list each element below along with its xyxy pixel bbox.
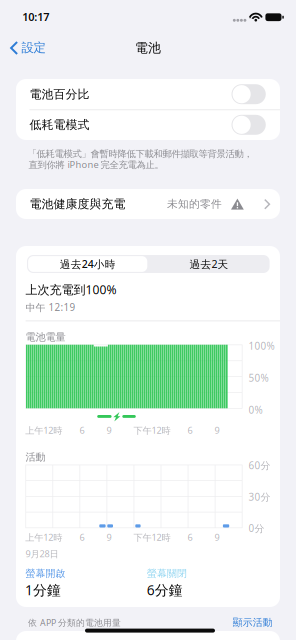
staticText: 9月28日 — [26, 547, 59, 560]
staticText: 電池百分比 — [29, 87, 89, 102]
staticText: 中午 12:19 — [26, 300, 76, 314]
button[interactable]: 低耗電模式 — [16, 110, 280, 140]
staticText: 直到你將 iPhone 完全充電為止。 — [29, 158, 164, 171]
staticText: 50% — [248, 371, 268, 385]
staticText: 過去2天 — [189, 257, 228, 271]
staticText: 下午12時 — [133, 531, 170, 543]
staticText: 電池 — [135, 40, 161, 56]
button[interactable]: 顯示活動 — [215, 613, 273, 631]
staticText: 6 — [79, 531, 84, 543]
staticText: 電池電量 — [26, 331, 66, 343]
button[interactable]: 電池百分比 — [16, 79, 280, 109]
button[interactable]: 電池健康度與充電 — [16, 189, 280, 219]
button[interactable]: 過去2天 — [149, 256, 268, 272]
staticText: 下午12時 — [133, 424, 170, 436]
staticText: 60分 — [248, 459, 270, 472]
staticText: 低耗電模式 — [29, 117, 89, 132]
staticText: 1分鐘 — [25, 580, 61, 599]
staticText: 9 — [214, 424, 219, 436]
button[interactable]: 設定 — [6, 37, 54, 59]
staticText: 電池健康度與充電 — [29, 196, 125, 211]
staticText: 10:17 — [22, 9, 49, 24]
staticText: 螢幕開啟 — [25, 567, 65, 580]
staticText: 設定 — [22, 40, 46, 55]
staticText: 「低耗電模式」會暫時降低下載和郵件擷取等背景活動， — [27, 148, 252, 160]
staticText: 0分 — [248, 521, 264, 535]
staticText: 6分鐘 — [147, 580, 183, 599]
staticText: 螢幕關閉 — [147, 567, 187, 580]
staticText: 6 — [79, 424, 84, 436]
staticText: 過去24小時 — [60, 257, 116, 271]
staticText: 上次充電到100% — [25, 281, 116, 298]
staticText: 上午12時 — [25, 424, 62, 436]
staticText: 6 — [187, 531, 192, 543]
staticText: 上午12時 — [25, 531, 62, 543]
staticText: 依 APP 分類的電池用量 — [28, 616, 121, 628]
button[interactable]: 過去24小時 — [28, 256, 147, 272]
staticText: 9 — [106, 531, 111, 543]
staticText: 100% — [248, 339, 274, 353]
staticText: 9 — [214, 531, 219, 543]
staticText: 9 — [106, 424, 111, 436]
staticText: 活動 — [26, 451, 46, 464]
staticText: 未知的零件 — [167, 197, 222, 211]
staticText: 顯示活動 — [233, 616, 273, 629]
staticText: 0% — [248, 403, 262, 417]
staticText: 6 — [187, 424, 192, 436]
staticText: 30分 — [248, 490, 270, 504]
